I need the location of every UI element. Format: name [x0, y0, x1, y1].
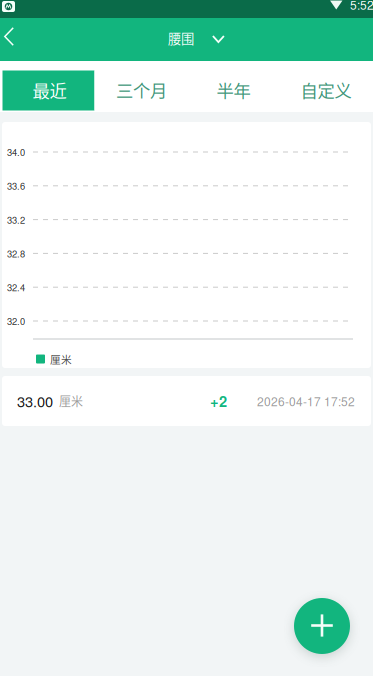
button[interactable]: 最近 — [2, 70, 94, 110]
button[interactable]: 半年 — [186, 70, 278, 110]
button[interactable]: 自定义 — [278, 70, 371, 110]
staticText: 2026-04-17 17:52 — [257, 392, 355, 410]
staticText: 32.4 — [7, 280, 25, 294]
staticText: 半年 — [216, 77, 250, 103]
staticText: 三个月 — [116, 77, 167, 103]
staticText: 33.00 — [17, 390, 53, 411]
staticText: 自定义 — [300, 77, 351, 103]
button[interactable]: 腰围 — [168, 18, 230, 61]
button[interactable]: Add record — [294, 598, 350, 654]
staticText: 34.0 — [7, 145, 25, 159]
staticText: +2 — [210, 390, 227, 411]
button[interactable]: 三个月 — [94, 70, 186, 110]
button[interactable]: 33.00 — [0, 376, 373, 426]
button[interactable]: Back — [0, 18, 30, 61]
staticText: 33.6 — [7, 179, 25, 192]
staticText: 厘米 — [59, 392, 83, 410]
staticText: 32.0 — [7, 314, 25, 328]
staticText: 33.2 — [7, 213, 25, 226]
staticText: 32.8 — [7, 247, 25, 260]
staticText: 最近 — [32, 77, 66, 103]
staticText: 5:52 — [350, 0, 373, 13]
staticText: 腰围 — [168, 28, 194, 48]
staticText: 厘米 — [50, 351, 72, 367]
